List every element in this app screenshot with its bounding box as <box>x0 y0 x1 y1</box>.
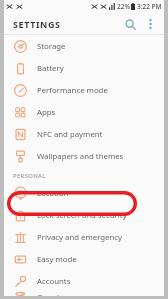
staticText: Lock screen and security <box>37 210 127 221</box>
button[interactable]: Easy mode <box>4 248 164 270</box>
button[interactable]: Apps <box>4 101 164 123</box>
staticText: NFC and payment <box>37 129 103 140</box>
button[interactable]: Search <box>121 15 139 33</box>
button[interactable]: More options <box>141 15 159 33</box>
button[interactable]: Accounts <box>4 270 164 292</box>
staticText: PERSONAL <box>13 172 46 180</box>
staticText: Easy mode <box>37 254 77 265</box>
button[interactable]: Lock screen and security <box>4 204 164 226</box>
button[interactable]: Storage <box>4 35 164 57</box>
button[interactable]: Performance mode <box>4 79 164 101</box>
staticText: Accounts <box>37 276 71 287</box>
staticText: Battery <box>37 63 64 74</box>
button[interactable]: Location <box>4 182 164 204</box>
staticText: Wallpapers and themes <box>37 151 124 162</box>
staticText: 3:22 PM <box>137 2 162 11</box>
staticText: SETTINGS <box>13 18 61 30</box>
button[interactable]: Privacy and emergency <box>4 226 164 248</box>
staticText: Location <box>37 188 69 199</box>
button[interactable]: NFC and payment <box>4 123 164 145</box>
button[interactable]: Wallpapers and themes <box>4 145 164 167</box>
staticText: Storage <box>37 41 66 52</box>
staticText: 22% <box>117 2 130 11</box>
button[interactable]: Battery <box>4 57 164 79</box>
button[interactable]: Google <box>4 292 164 296</box>
staticText: Performance mode <box>37 85 108 96</box>
staticText: Apps <box>37 107 56 118</box>
staticText: Privacy and emergency <box>37 232 123 243</box>
staticText: Google <box>37 292 64 296</box>
